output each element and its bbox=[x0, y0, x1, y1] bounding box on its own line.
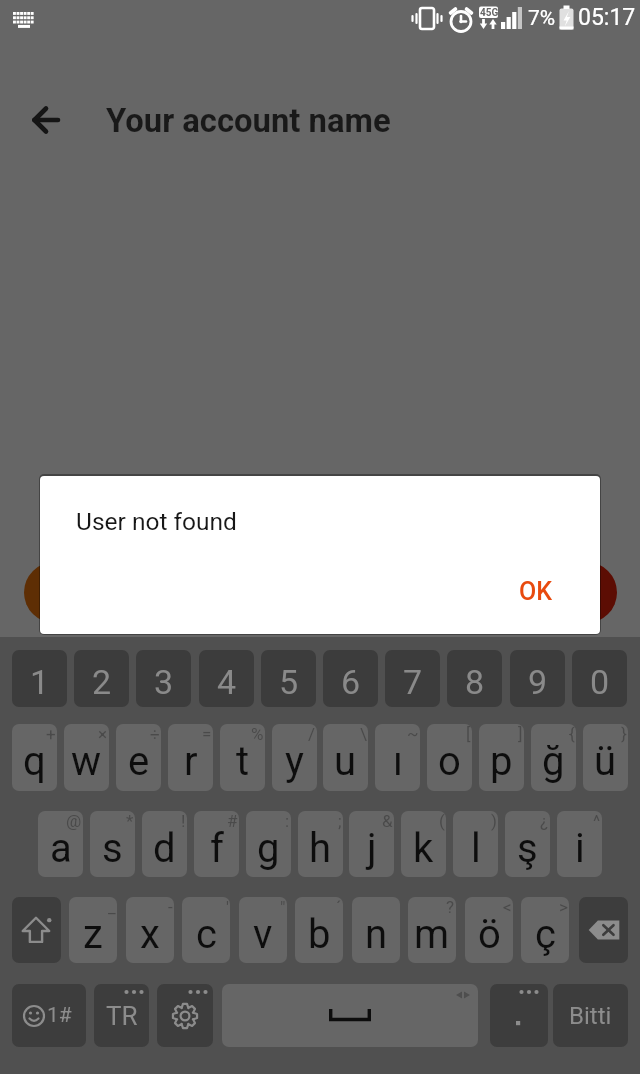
button[interactable]: ¿ bbox=[505, 811, 550, 877]
staticText: { bbox=[569, 724, 575, 744]
button[interactable]: % bbox=[220, 724, 265, 791]
staticText: m bbox=[414, 911, 450, 958]
staticText: OK bbox=[519, 577, 553, 606]
button[interactable]: ) bbox=[453, 811, 498, 877]
staticText: < bbox=[503, 897, 512, 917]
button[interactable]: = bbox=[168, 724, 213, 791]
button[interactable]: ( bbox=[401, 811, 446, 877]
button[interactable]: × bbox=[64, 724, 109, 791]
staticText: % bbox=[251, 724, 264, 744]
staticText: t bbox=[236, 738, 250, 785]
button[interactable]: + bbox=[12, 724, 57, 791]
staticText: a bbox=[50, 825, 72, 872]
button[interactable]: @ bbox=[38, 811, 83, 877]
staticText: ) bbox=[491, 811, 497, 831]
button[interactable]: n bbox=[352, 897, 400, 963]
button[interactable]: 6 bbox=[323, 650, 378, 707]
staticText: o bbox=[438, 738, 461, 785]
button[interactable]: & bbox=[349, 811, 394, 877]
button[interactable]: ÷ bbox=[116, 724, 161, 791]
button[interactable]: ; bbox=[298, 811, 343, 877]
staticText: > bbox=[559, 897, 568, 917]
button[interactable]: { bbox=[531, 724, 576, 791]
staticText: 8 bbox=[465, 662, 485, 702]
staticText: / bbox=[308, 724, 316, 744]
staticText: f bbox=[210, 825, 224, 872]
button[interactable]: 8 bbox=[447, 650, 502, 707]
staticText: j bbox=[367, 825, 377, 872]
staticText: b bbox=[308, 911, 331, 958]
button[interactable]: 4 bbox=[199, 650, 254, 707]
staticText: ? bbox=[446, 897, 455, 917]
button[interactable]: # bbox=[194, 811, 239, 877]
staticText: g bbox=[257, 825, 280, 872]
staticText: y bbox=[285, 738, 304, 785]
button[interactable]: Bitti bbox=[553, 984, 628, 1047]
button[interactable]: OK bbox=[486, 550, 584, 612]
staticText: 2 bbox=[92, 662, 112, 702]
button[interactable]: ! bbox=[142, 811, 187, 877]
button[interactable]: Space bbox=[222, 984, 478, 1047]
button[interactable]: } bbox=[583, 724, 628, 791]
button[interactable]: 1 bbox=[12, 650, 67, 707]
staticText: 1# bbox=[47, 1003, 72, 1028]
button[interactable]: Emoji and symbols bbox=[12, 984, 86, 1047]
button[interactable]: Back bbox=[22, 96, 70, 144]
staticText: ´ bbox=[336, 897, 342, 917]
button[interactable]: ] bbox=[479, 724, 524, 791]
staticText: 7 bbox=[403, 662, 423, 702]
button[interactable]: ' bbox=[182, 897, 230, 963]
button[interactable]: ´ bbox=[295, 897, 343, 963]
button[interactable]: Shift bbox=[12, 897, 61, 963]
button[interactable]: / bbox=[272, 724, 317, 791]
button[interactable]: [ bbox=[427, 724, 472, 791]
staticText: ] bbox=[518, 724, 523, 744]
staticText: z bbox=[83, 911, 103, 958]
staticText: = bbox=[202, 724, 212, 744]
button[interactable]: Primary action bbox=[24, 562, 85, 623]
staticText: ğ bbox=[542, 738, 565, 785]
staticText: ! bbox=[181, 811, 186, 831]
button[interactable]: Period bbox=[490, 984, 548, 1047]
staticText: v bbox=[253, 911, 273, 958]
staticText: ç bbox=[535, 911, 556, 958]
staticText: ü bbox=[594, 738, 617, 785]
staticText: ÷ bbox=[150, 724, 160, 744]
button[interactable]: < bbox=[465, 897, 513, 963]
button[interactable]: TR bbox=[94, 984, 149, 1047]
staticText: p bbox=[490, 738, 513, 785]
button[interactable]: Secondary action bbox=[556, 562, 617, 623]
button[interactable]: _ bbox=[69, 897, 117, 963]
staticText: ¿ bbox=[540, 811, 549, 831]
button[interactable]: ^ bbox=[557, 811, 602, 877]
staticText: [ bbox=[466, 724, 471, 744]
button[interactable]: Keyboard settings bbox=[157, 984, 213, 1047]
staticText: ~ bbox=[407, 724, 419, 744]
staticText: 0 bbox=[590, 662, 610, 702]
button[interactable]: 7 bbox=[385, 650, 440, 707]
button[interactable]: " bbox=[239, 897, 287, 963]
button[interactable]: 0 bbox=[572, 650, 627, 707]
button[interactable]: Backspace bbox=[579, 897, 628, 963]
button[interactable]: * bbox=[90, 811, 135, 877]
button[interactable]: 2 bbox=[74, 650, 129, 707]
button[interactable]: 9 bbox=[510, 650, 565, 707]
staticText: q bbox=[23, 738, 46, 785]
staticText: s bbox=[102, 825, 123, 872]
staticText: " bbox=[280, 897, 286, 917]
button[interactable]: - bbox=[126, 897, 174, 963]
button[interactable]: ? bbox=[408, 897, 456, 963]
button[interactable]: 5 bbox=[261, 650, 316, 707]
staticText: ; bbox=[338, 811, 342, 831]
staticText: @ bbox=[66, 811, 82, 831]
staticText: # bbox=[227, 811, 238, 831]
staticText: e bbox=[128, 738, 150, 785]
button[interactable]: > bbox=[521, 897, 569, 963]
staticText: - bbox=[168, 897, 173, 917]
staticText: 9 bbox=[528, 662, 548, 702]
button[interactable]: \ bbox=[323, 724, 368, 791]
button[interactable]: : bbox=[246, 811, 291, 877]
button[interactable]: 3 bbox=[136, 650, 191, 707]
staticText: + bbox=[46, 724, 56, 744]
button[interactable]: ~ bbox=[375, 724, 420, 791]
